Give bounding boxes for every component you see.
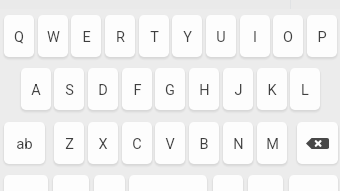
staticText: L xyxy=(301,82,309,99)
button[interactable]: D xyxy=(88,68,118,110)
button[interactable]: N xyxy=(223,122,253,164)
staticText: W xyxy=(47,29,60,46)
button[interactable]: Z xyxy=(54,122,84,164)
button[interactable]: K xyxy=(257,68,287,110)
button[interactable]: T xyxy=(139,15,169,57)
button[interactable]: R xyxy=(105,15,135,57)
button[interactable]: I xyxy=(240,15,270,57)
button[interactable]: V xyxy=(155,122,185,164)
button[interactable]: W xyxy=(38,15,68,57)
staticText: E xyxy=(82,29,91,46)
staticText: N xyxy=(233,136,244,153)
button[interactable]: F xyxy=(122,68,152,110)
staticText: V xyxy=(165,136,175,153)
staticText: O xyxy=(283,29,293,46)
staticText: I xyxy=(253,29,257,46)
staticText: J xyxy=(234,82,243,99)
button[interactable]: E xyxy=(71,15,101,57)
staticText: P xyxy=(317,29,327,46)
button[interactable]: O xyxy=(273,15,303,57)
staticText: Q xyxy=(14,29,24,46)
button[interactable]: B xyxy=(189,122,219,164)
staticText: Z xyxy=(65,136,74,153)
button[interactable]: C xyxy=(122,122,152,164)
button[interactable]: A xyxy=(21,68,51,110)
staticText: S xyxy=(65,82,74,99)
staticText: X xyxy=(98,136,108,153)
button[interactable]: H xyxy=(189,68,219,110)
staticText: B xyxy=(199,136,209,153)
staticText: M xyxy=(266,136,279,153)
button[interactable]: J xyxy=(223,68,253,110)
button[interactable]: Q xyxy=(4,15,34,57)
button[interactable]: ab xyxy=(4,122,45,164)
staticText: R xyxy=(116,29,125,46)
button[interactable]: X xyxy=(88,122,118,164)
button[interactable]: S xyxy=(54,68,84,110)
button[interactable]: G xyxy=(155,68,185,110)
staticText: H xyxy=(199,82,210,99)
staticText: Y xyxy=(183,29,192,46)
button[interactable]: L xyxy=(290,68,320,110)
button[interactable]: M xyxy=(257,122,287,164)
staticText: ab xyxy=(16,135,33,153)
button[interactable]: Y xyxy=(172,15,202,57)
staticText: T xyxy=(150,29,159,46)
staticText: G xyxy=(165,82,175,99)
staticText: D xyxy=(98,82,108,99)
button[interactable]: P xyxy=(307,15,337,57)
staticText: A xyxy=(31,82,41,99)
staticText: C xyxy=(132,136,142,153)
button[interactable]: Backspace xyxy=(297,122,338,164)
button[interactable]: U xyxy=(206,15,236,57)
staticText: U xyxy=(216,29,226,46)
staticText: F xyxy=(133,82,142,99)
staticText: K xyxy=(267,82,277,99)
